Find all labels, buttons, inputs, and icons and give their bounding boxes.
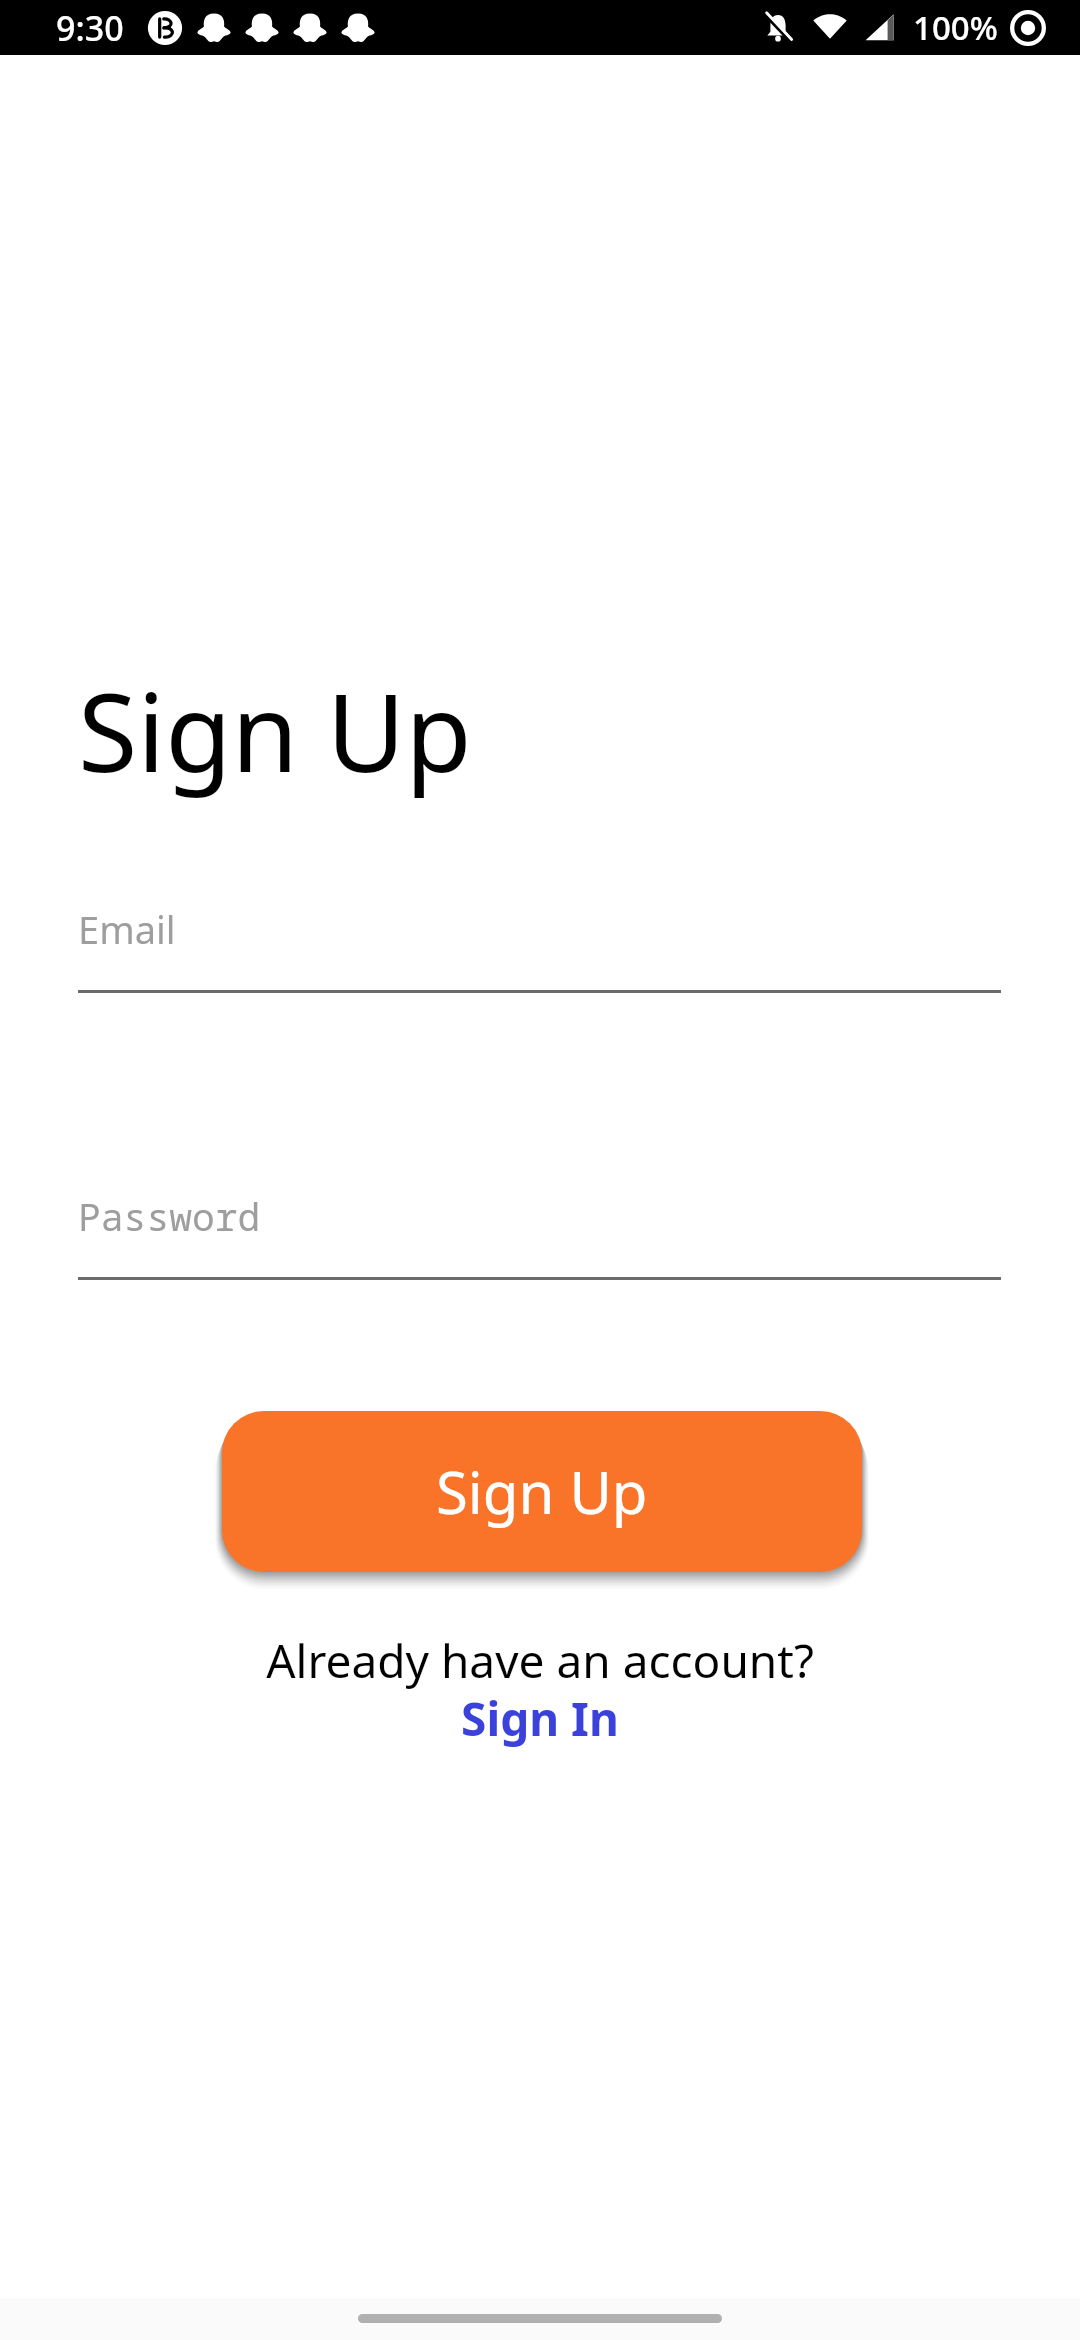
staticText: Already have an account?: [0, 1629, 1080, 1692]
button[interactable]: Email input field: [78, 877, 1001, 994]
staticText: 100%: [913, 5, 998, 50]
button[interactable]: Password input field: [78, 1164, 1001, 1281]
other: Home gesture handle: [358, 2314, 722, 2323]
staticText: Sign Up: [436, 1452, 648, 1531]
staticText: Password: [78, 1190, 261, 1242]
button[interactable]: Sign Up: [222, 1411, 862, 1572]
button[interactable]: Sign In: [0, 1687, 1080, 1750]
staticText: Sign Up: [78, 657, 472, 804]
staticText: Sign In: [461, 1687, 619, 1750]
staticText: 9:30: [56, 5, 124, 51]
staticText: Email: [78, 903, 176, 955]
